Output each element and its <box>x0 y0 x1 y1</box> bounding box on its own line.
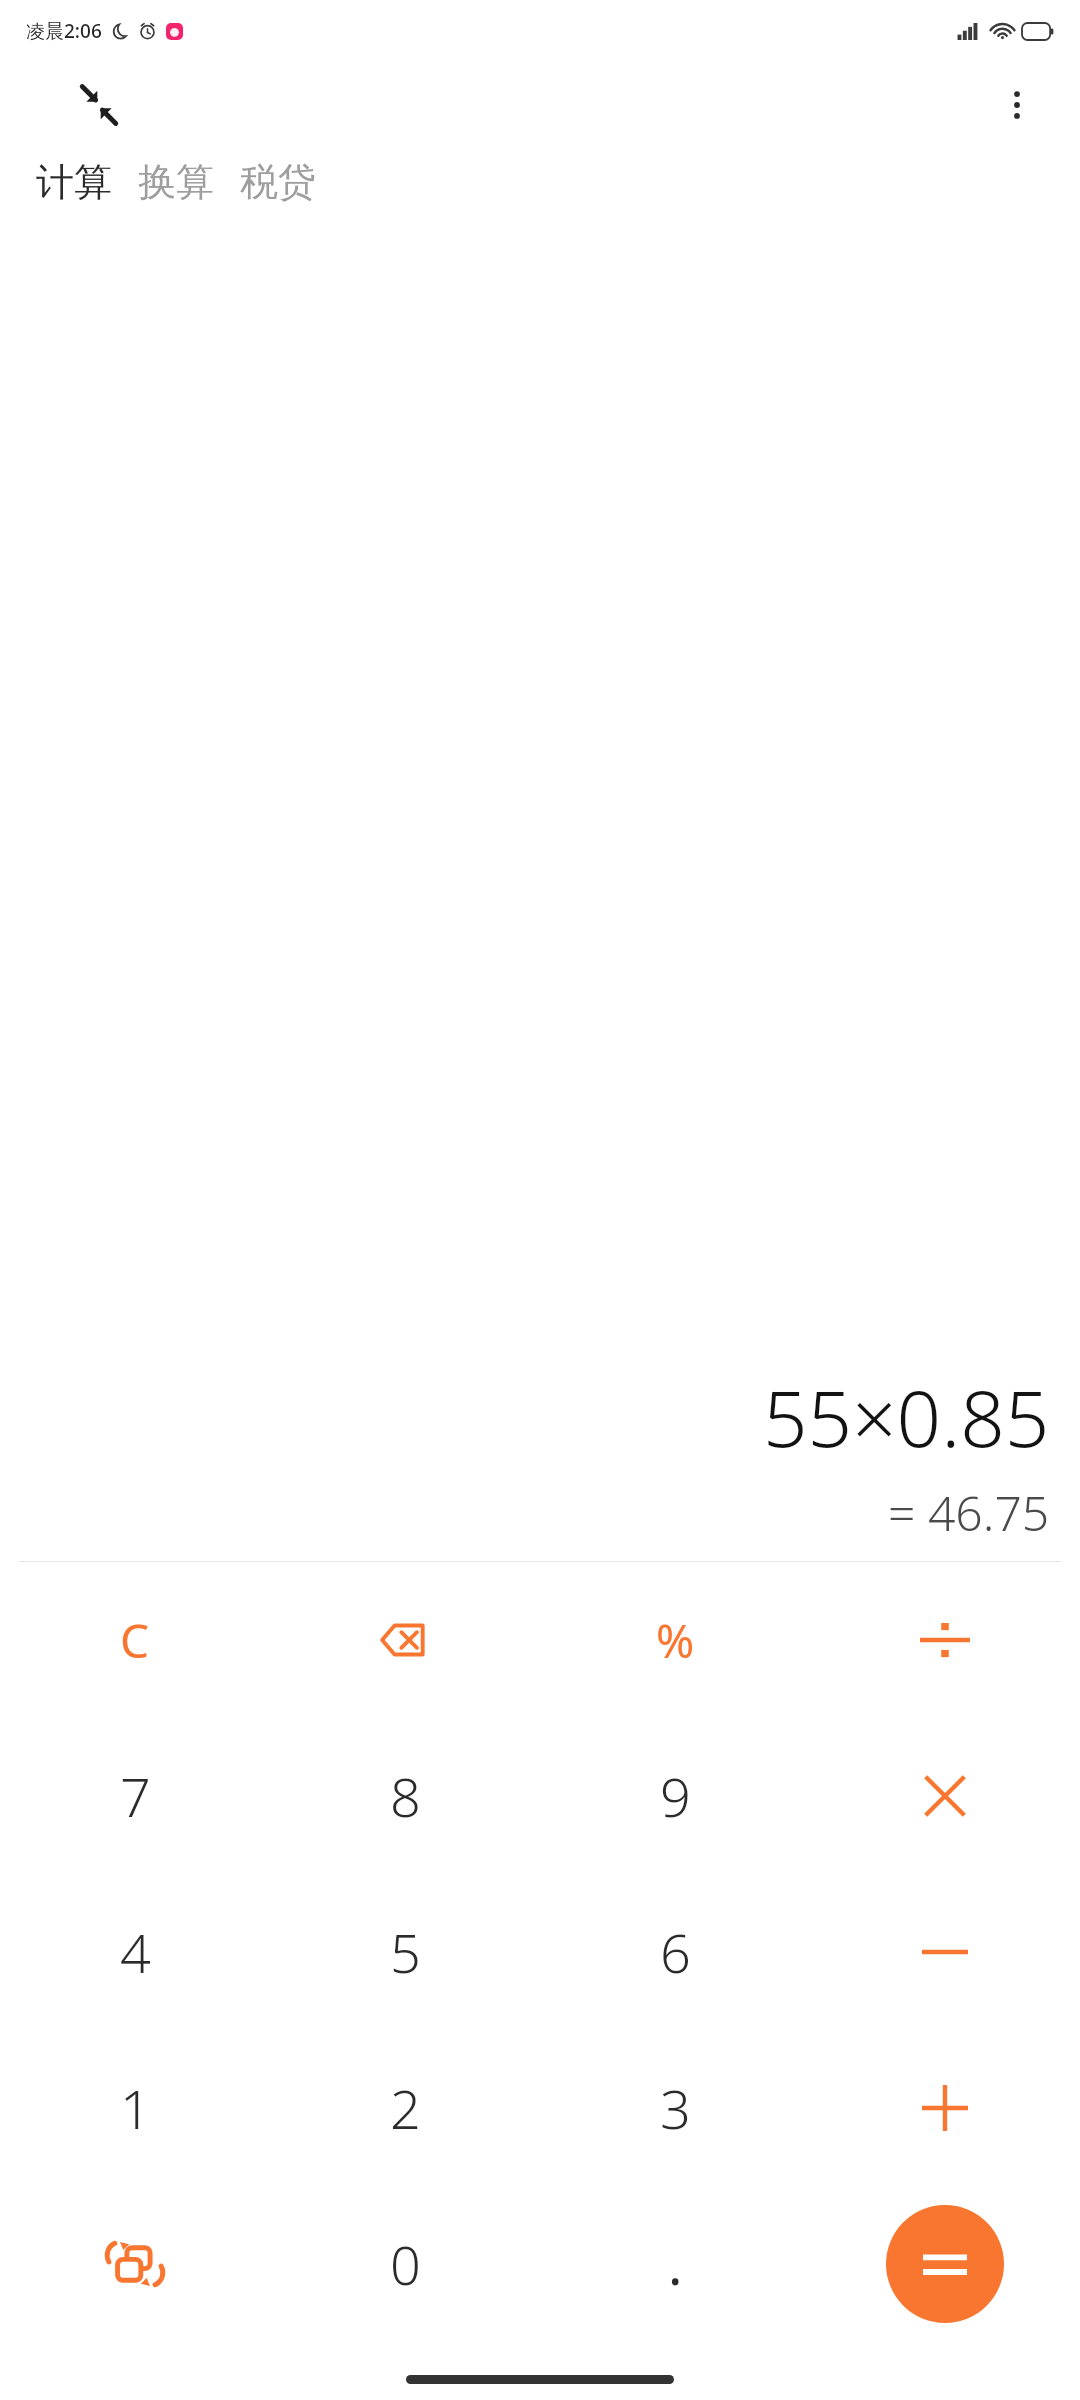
button[interactable]: 6 <box>600 1897 750 2007</box>
button[interactable]: 2 <box>330 2053 480 2163</box>
button[interactable]: Clear <box>60 1585 210 1695</box>
button[interactable]: Divide <box>870 1585 1020 1695</box>
button[interactable]: 5 <box>330 1897 480 2007</box>
button[interactable]: 税贷 <box>232 154 324 210</box>
button[interactable]: Equals <box>886 2205 1004 2323</box>
button[interactable]: 7 <box>60 1741 210 1851</box>
button[interactable]: Collapse <box>72 78 126 132</box>
staticText: 3 <box>660 2071 691 2145</box>
button[interactable]: Minus <box>870 1897 1020 2007</box>
staticText: 税贷 <box>240 158 316 206</box>
button[interactable]: 计算 <box>28 154 120 210</box>
button[interactable]: 0 <box>330 2209 480 2319</box>
staticText: 2 <box>390 2071 421 2145</box>
staticText: 计算 <box>36 158 112 206</box>
button[interactable]: 8 <box>330 1741 480 1851</box>
button[interactable]: Percent <box>600 1585 750 1695</box>
button[interactable]: Decimal point <box>600 2209 750 2319</box>
button[interactable]: Plus <box>870 2053 1020 2163</box>
button[interactable]: 9 <box>600 1741 750 1851</box>
staticText: 9 <box>660 1759 691 1833</box>
button[interactable]: Convert <box>60 2209 210 2319</box>
button[interactable]: Multiply <box>870 1741 1020 1851</box>
staticText: 0 <box>390 2227 421 2301</box>
staticText: 1 <box>120 2071 151 2145</box>
staticText: . <box>668 2227 683 2301</box>
staticText: 凌晨2:06 <box>26 18 102 44</box>
button[interactable]: 1 <box>60 2053 210 2163</box>
button[interactable]: 3 <box>600 2053 750 2163</box>
staticText: 7 <box>120 1759 151 1833</box>
button[interactable]: 换算 <box>130 154 222 210</box>
button[interactable]: More options <box>986 74 1048 136</box>
button[interactable]: Backspace <box>330 1585 480 1695</box>
button[interactable]: 4 <box>60 1897 210 2007</box>
staticText: 55×0.85 <box>763 1364 1050 1470</box>
staticText: C <box>120 1609 150 1672</box>
staticText: % <box>656 1609 695 1672</box>
staticText: 4 <box>120 1915 151 1989</box>
staticText: 8 <box>390 1759 421 1833</box>
staticText: 5 <box>390 1915 421 1989</box>
staticText: = 46.75 <box>888 1480 1050 1545</box>
staticText: 6 <box>660 1915 691 1989</box>
staticText: 换算 <box>138 158 214 206</box>
